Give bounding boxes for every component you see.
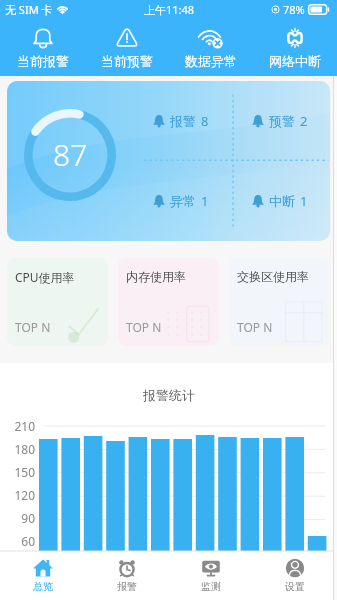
staticText: 90: [0, 510, 35, 526]
button[interactable]: CPU使用率: [7, 258, 108, 346]
staticText: TOP N: [237, 319, 273, 335]
staticText: 1: [300, 192, 308, 210]
staticText: 87: [53, 134, 88, 175]
staticText: TOP N: [126, 319, 162, 335]
staticText: 8: [201, 112, 209, 130]
staticText: 210: [0, 418, 35, 434]
staticText: 交换区使用率: [237, 269, 309, 284]
button[interactable]: 总览: [0, 551, 85, 600]
staticText: 网络中断: [269, 53, 321, 69]
staticText: 2: [300, 112, 308, 130]
staticText: 异常: [170, 193, 196, 209]
staticText: 报警: [117, 580, 137, 593]
staticText: TOP N: [15, 319, 51, 335]
staticText: 监测: [201, 580, 221, 593]
button[interactable]: 网络中断: [253, 19, 337, 76]
staticText: 78%: [283, 2, 305, 17]
staticText: 60: [0, 533, 35, 549]
staticText: 预警: [269, 113, 295, 129]
button[interactable]: 监测: [169, 551, 253, 600]
button[interactable]: 异常: [131, 161, 230, 241]
button[interactable]: 中断: [230, 161, 330, 241]
button[interactable]: 当前预警: [85, 19, 169, 76]
staticText: 总览: [33, 580, 53, 593]
staticText: 180: [0, 441, 35, 457]
staticText: CPU使用率: [15, 269, 75, 285]
button[interactable]: 预警: [230, 81, 330, 161]
staticText: 120: [0, 487, 35, 503]
button[interactable]: 交换区使用率: [229, 258, 330, 346]
staticText: 上午11:48: [144, 2, 195, 17]
staticText: 设置: [285, 580, 305, 593]
staticText: 内存使用率: [126, 269, 186, 284]
staticText: 150: [0, 464, 35, 480]
staticText: 无 SIM 卡: [5, 2, 53, 17]
button[interactable]: 设置: [253, 551, 337, 600]
button[interactable]: 报警: [85, 551, 169, 600]
button[interactable]: 内存使用率: [118, 258, 219, 346]
staticText: 1: [201, 192, 209, 210]
staticText: 当前报警: [17, 53, 69, 69]
button[interactable]: 数据异常: [169, 19, 253, 76]
staticText: 当前预警: [101, 53, 153, 69]
staticText: 数据异常: [185, 53, 237, 69]
staticText: 中断: [269, 193, 295, 209]
button[interactable]: 当前报警: [0, 19, 85, 76]
staticText: 报警统计: [143, 387, 195, 403]
button[interactable]: 报警: [131, 81, 230, 161]
staticText: 报警: [170, 113, 196, 129]
